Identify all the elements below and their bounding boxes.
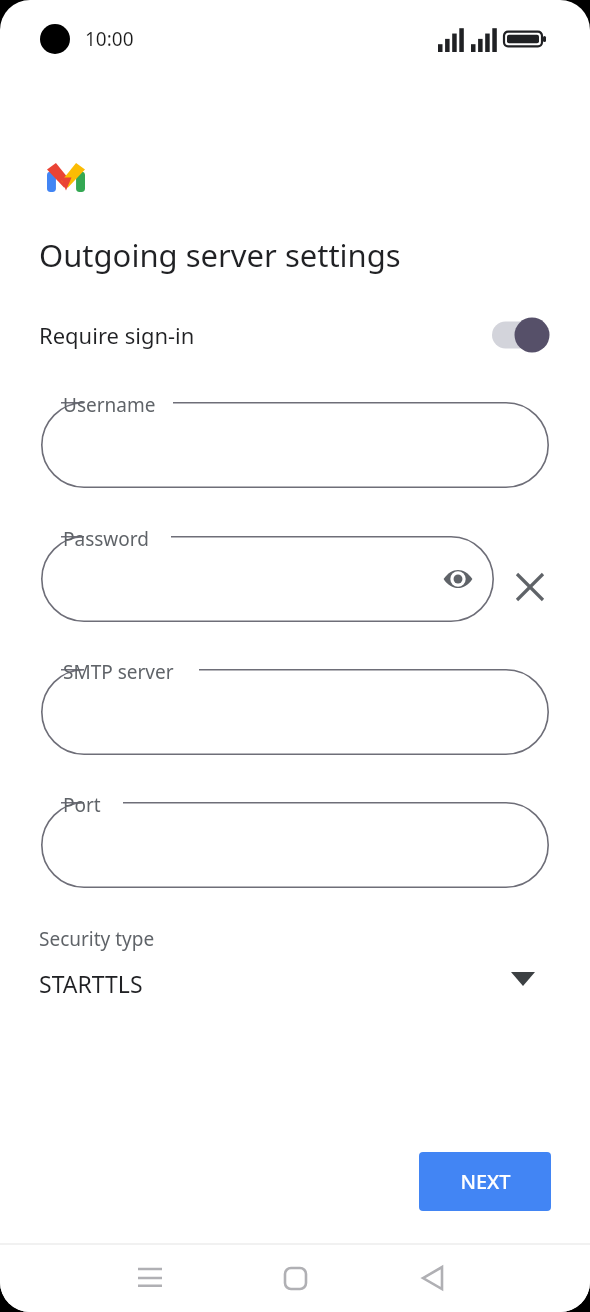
button[interactable]: Show password (436, 557, 480, 601)
button[interactable]: Home (267, 1250, 323, 1306)
button[interactable]: Clear password (508, 565, 552, 609)
button[interactable]: Back (404, 1250, 460, 1306)
button[interactable]: Recent apps (122, 1250, 178, 1306)
button[interactable]: Require sign-in (0, 310, 590, 360)
button[interactable]: NEXT (419, 1152, 551, 1211)
button[interactable] (41, 802, 549, 888)
staticText: STARTTLS (39, 968, 143, 999)
staticText: Outgoing server settings (39, 234, 401, 276)
other: Require sign-in toggle (492, 315, 556, 355)
staticText: Security type (39, 926, 155, 952)
staticText: Password (63, 526, 149, 552)
button[interactable] (41, 402, 549, 488)
staticText: Port (63, 792, 101, 818)
staticText: SMTP server (63, 659, 174, 685)
staticText: Username (63, 392, 156, 418)
staticText: Require sign-in (39, 320, 195, 350)
button[interactable]: Show password (41, 536, 494, 622)
staticText: NEXT (460, 1168, 511, 1195)
button[interactable] (41, 669, 549, 755)
staticText: 10:00 (85, 26, 134, 52)
button[interactable]: Security type (0, 920, 590, 1010)
